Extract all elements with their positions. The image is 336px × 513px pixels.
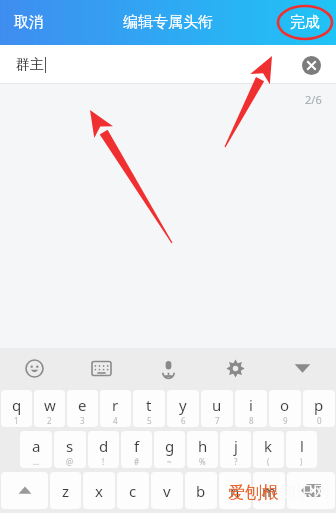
- button[interactable]: Keyboard layout: [68, 348, 135, 388]
- button[interactable]: y: [167, 390, 199, 427]
- button[interactable]: m: [253, 472, 285, 509]
- button[interactable]: Emoji: [0, 348, 68, 388]
- staticText: m: [262, 481, 277, 501]
- button[interactable]: Clear text: [300, 54, 322, 76]
- staticText: x: [95, 481, 103, 501]
- staticText: 5: [147, 415, 152, 426]
- staticText: z: [62, 481, 70, 501]
- button[interactable]: f: [121, 431, 152, 468]
- button[interactable]: z: [50, 472, 81, 509]
- staticText: q: [12, 395, 22, 415]
- staticText: 7: [215, 415, 220, 426]
- staticText: 完成: [290, 13, 320, 32]
- button[interactable]: x: [83, 472, 115, 509]
- staticText: 爱刨根: [228, 482, 279, 503]
- button[interactable]: l: [286, 431, 317, 468]
- button[interactable]: 群主: [0, 45, 336, 84]
- staticText: t: [146, 395, 152, 415]
- button[interactable]: g: [154, 431, 185, 468]
- button[interactable]: p: [303, 390, 335, 427]
- staticText: n: [230, 481, 240, 501]
- staticText: ?: [234, 456, 238, 467]
- staticText: r: [112, 395, 119, 415]
- button[interactable]: i: [235, 390, 267, 427]
- staticText: o: [280, 395, 290, 415]
- staticText: g: [165, 436, 175, 456]
- button[interactable]: j: [220, 431, 251, 468]
- staticText: v: [163, 481, 171, 501]
- staticText: 1: [14, 415, 19, 426]
- staticText: 群主: [16, 56, 44, 74]
- button[interactable]: c: [117, 472, 149, 509]
- staticText: i: [249, 395, 253, 415]
- button[interactable]: d: [88, 431, 119, 468]
- staticText: 2/6: [305, 92, 322, 107]
- button[interactable]: w: [34, 390, 65, 427]
- button[interactable]: s: [54, 431, 86, 468]
- button[interactable]: u: [201, 390, 233, 427]
- staticText: l: [300, 436, 304, 456]
- button[interactable]: k: [253, 431, 284, 468]
- button[interactable]: Shift: [1, 472, 48, 509]
- button[interactable]: o: [269, 390, 301, 427]
- staticText: 6: [181, 415, 186, 426]
- staticText: 9: [283, 415, 288, 426]
- staticText: s: [66, 436, 74, 456]
- staticText: b: [196, 481, 206, 501]
- staticText: c: [129, 481, 137, 501]
- button[interactable]: v: [151, 472, 183, 509]
- staticText: 8: [249, 415, 254, 426]
- staticText: p: [314, 395, 324, 415]
- staticText: !: [102, 456, 105, 467]
- staticText: 知识网: [279, 482, 330, 503]
- staticText: (: [267, 456, 270, 467]
- staticText: j: [234, 436, 238, 456]
- button[interactable]: Settings: [202, 348, 269, 388]
- staticText: e: [78, 395, 87, 415]
- staticText: 取消: [14, 13, 44, 32]
- button[interactable]: h: [187, 431, 218, 468]
- staticText: u: [212, 395, 222, 415]
- button[interactable]: Hide keyboard: [269, 348, 336, 388]
- staticText: #: [134, 456, 140, 467]
- staticText: d: [99, 436, 109, 456]
- button[interactable]: t: [133, 390, 165, 427]
- button[interactable]: Voice input: [135, 348, 202, 388]
- button[interactable]: q: [1, 390, 32, 427]
- staticText: h: [198, 436, 208, 456]
- button[interactable]: r: [100, 390, 131, 427]
- button[interactable]: Backspace: [287, 472, 335, 509]
- staticText: 编辑专属头衔: [123, 13, 213, 32]
- staticText: f: [134, 436, 140, 456]
- staticText: ~: [167, 456, 172, 467]
- button[interactable]: e: [67, 390, 98, 427]
- staticText: y: [179, 395, 187, 415]
- staticText: k: [264, 436, 273, 456]
- button[interactable]: b: [185, 472, 217, 509]
- button[interactable]: a: [20, 431, 52, 468]
- button[interactable]: n: [219, 472, 251, 509]
- button[interactable]: 完成: [280, 5, 330, 40]
- button[interactable]: 取消: [4, 5, 54, 40]
- staticText: 4: [113, 415, 118, 426]
- staticText: %: [199, 456, 206, 467]
- staticText: …: [33, 456, 40, 467]
- staticText: ): [300, 456, 303, 467]
- staticText: a: [32, 436, 41, 456]
- staticText: w: [44, 395, 56, 415]
- staticText: 2: [47, 415, 52, 426]
- staticText: 3: [80, 415, 85, 426]
- staticText: 0: [317, 415, 322, 426]
- staticText: @: [66, 456, 74, 467]
